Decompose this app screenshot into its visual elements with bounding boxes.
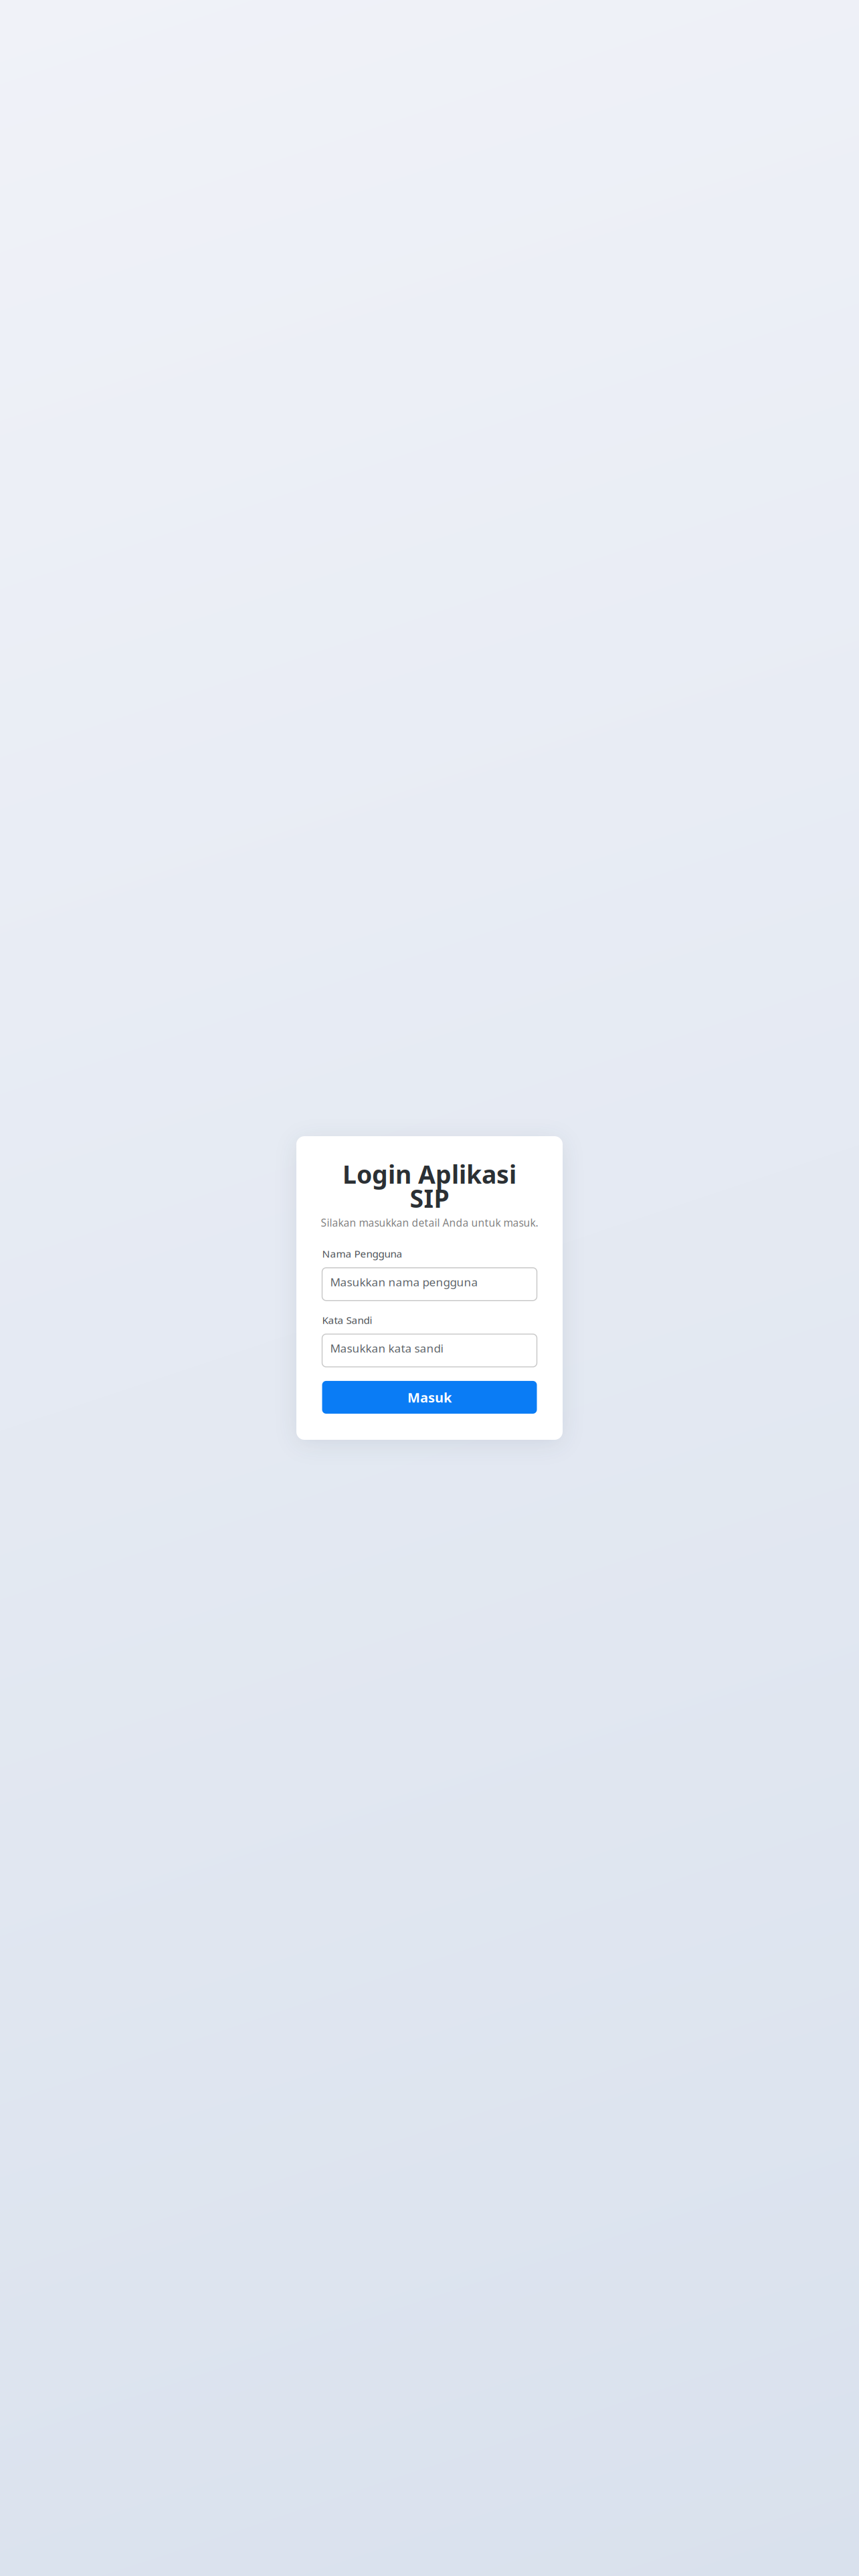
staticText: Masukkan kata sandi <box>330 1341 443 1356</box>
button[interactable]: Kata Sandi <box>322 1334 537 1367</box>
staticText: Masuk <box>407 1388 452 1406</box>
staticText: Nama Pengguna <box>322 1247 402 1260</box>
staticText: Kata Sandi <box>322 1313 372 1327</box>
staticText: Masukkan nama pengguna <box>330 1274 478 1289</box>
staticText: SIP <box>410 1181 449 1215</box>
staticText: Silakan masukkan detail Anda untuk masuk… <box>321 1216 538 1230</box>
button[interactable]: Nama Pengguna <box>322 1268 537 1301</box>
staticText: Login Aplikasi <box>343 1157 516 1191</box>
button[interactable]: Masuk <box>322 1381 537 1414</box>
